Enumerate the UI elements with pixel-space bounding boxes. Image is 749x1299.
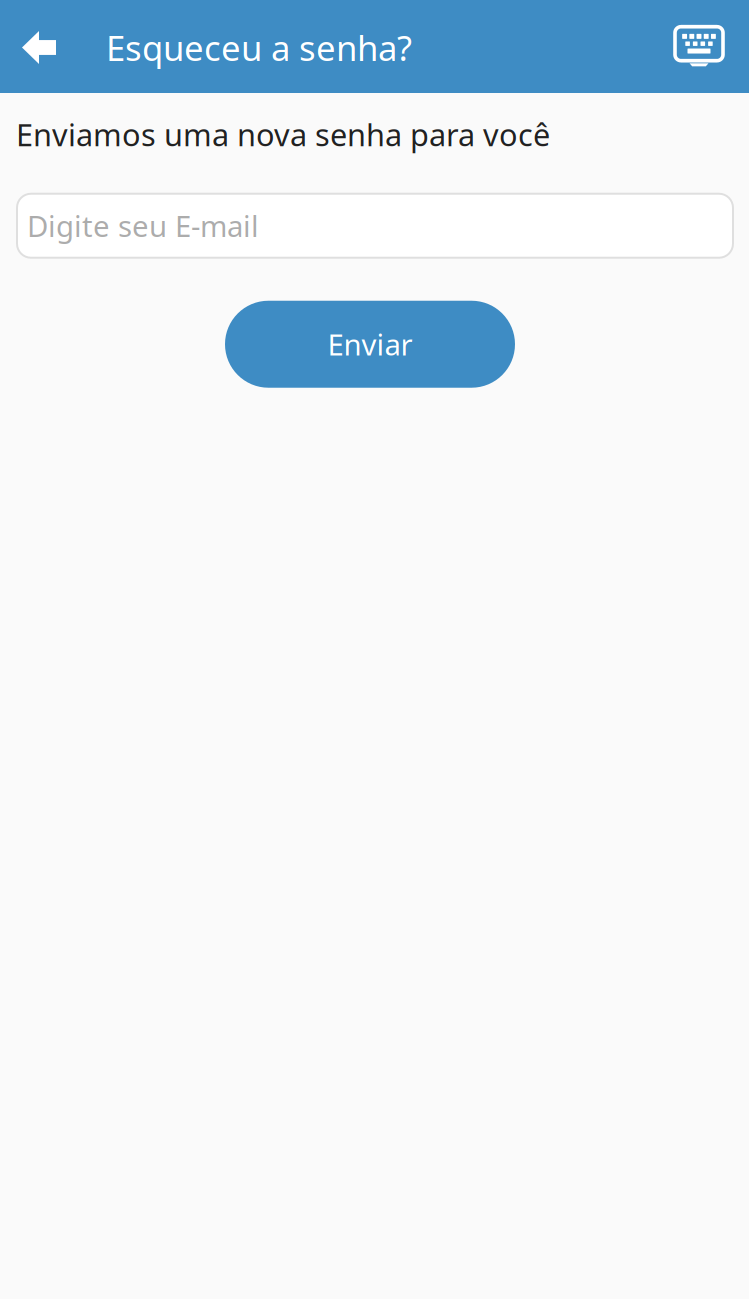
button[interactable]: Enviar — [225, 301, 515, 388]
button[interactable]: Back — [0, 0, 72, 93]
staticText: Digite seu E-mail — [27, 206, 259, 245]
staticText: Esqueceu a senha? — [106, 24, 412, 70]
staticText: Enviar — [327, 325, 412, 364]
staticText: Enviamos uma nova senha para você — [16, 114, 550, 155]
button[interactable]: Hide keyboard — [659, 0, 749, 93]
button[interactable]: Digite seu E-mail — [17, 194, 733, 258]
